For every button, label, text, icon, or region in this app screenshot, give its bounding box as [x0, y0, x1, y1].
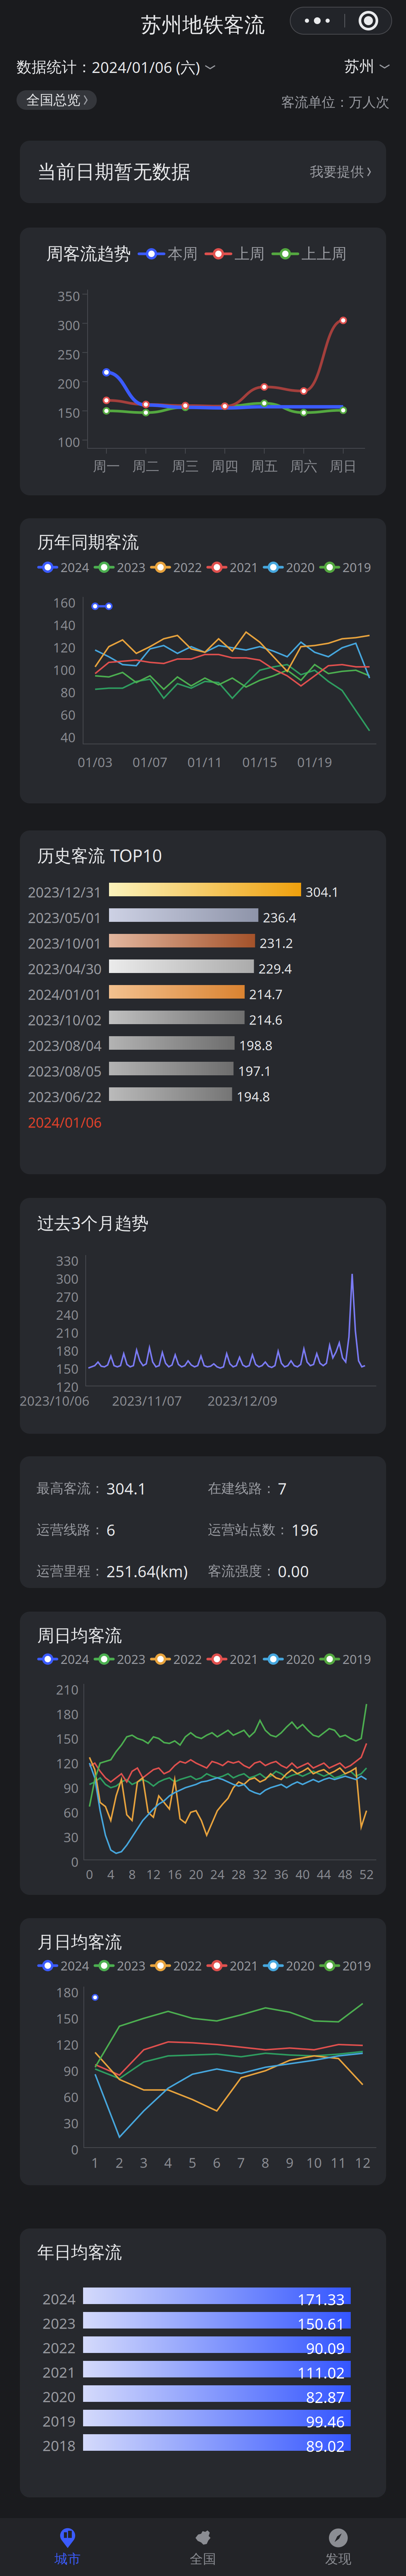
staticText: 2020	[286, 1957, 315, 1974]
staticText: 2023/10/06	[20, 1392, 89, 1409]
staticText: 2024/01/06	[28, 1113, 101, 1132]
staticText: 6	[213, 2154, 221, 2172]
staticText: 4	[107, 1866, 114, 1883]
staticText: 198.8	[239, 1037, 273, 1054]
staticText: 年日均客流	[37, 2242, 122, 2263]
staticText: 01/15	[242, 753, 277, 771]
staticText: 2024	[61, 1957, 89, 1974]
button[interactable]: 2024/01/06 (六)	[92, 57, 215, 77]
staticText: 发现	[325, 2551, 351, 2567]
staticText: 2021	[230, 1957, 258, 1974]
staticText: 2020	[286, 1651, 315, 1667]
staticText: 30	[64, 1829, 79, 1846]
staticText: 2023/08/05	[28, 1062, 101, 1080]
button[interactable]: 全国总览	[17, 90, 97, 110]
staticText: 60	[64, 1804, 79, 1821]
staticText: 229.4	[258, 960, 292, 977]
staticText: 9	[286, 2154, 294, 2172]
staticText: 2020	[42, 2387, 76, 2406]
staticText: 2023/12/09	[208, 1392, 277, 1409]
staticText: 300	[58, 317, 80, 334]
button[interactable]: More options	[290, 7, 344, 34]
staticText: 0	[86, 1866, 93, 1883]
staticText: 2023/11/07	[112, 1392, 182, 1409]
button[interactable]: 全国	[135, 2518, 271, 2576]
staticText: 40	[61, 729, 76, 746]
button[interactable]: 苏州	[344, 57, 389, 76]
staticText: 12	[355, 2154, 371, 2172]
staticText: 0	[71, 2141, 79, 2158]
staticText: 90	[64, 2062, 79, 2080]
staticText: 周客流趋势	[46, 243, 131, 264]
staticText: 99.46	[306, 2412, 345, 2432]
staticText: 111.02	[297, 2363, 345, 2383]
staticText: 上周	[235, 245, 265, 263]
staticText: 6	[106, 1519, 115, 1540]
staticText: 150	[56, 1730, 79, 1747]
staticText: 2019	[42, 2411, 76, 2431]
staticText: 2022	[173, 1651, 202, 1667]
button[interactable]: 城市	[0, 2518, 135, 2576]
staticText: 24	[210, 1866, 225, 1883]
staticText: 2023/10/02	[28, 1011, 101, 1029]
staticText: 7	[237, 2154, 245, 2172]
staticText: 44	[317, 1866, 331, 1883]
button[interactable]: 我要提供	[279, 141, 386, 203]
button[interactable]: Close	[345, 7, 392, 34]
staticText: 32	[253, 1866, 267, 1883]
staticText: 2023/04/30	[28, 959, 101, 978]
staticText: 197.1	[238, 1062, 271, 1079]
staticText: 2023/06/22	[28, 1087, 101, 1106]
staticText: 30	[64, 2115, 79, 2132]
staticText: 01/07	[133, 753, 167, 771]
staticText: 90.09	[306, 2338, 345, 2358]
staticText: 90	[64, 1779, 79, 1797]
staticText: 36	[274, 1866, 288, 1883]
staticText: 2022	[173, 559, 202, 576]
staticText: 当前日期暂无数据	[37, 160, 191, 184]
button[interactable]: 发现	[271, 2518, 406, 2576]
staticText: 120	[56, 2036, 79, 2053]
staticText: 150	[58, 404, 80, 421]
staticText: 2023/05/01	[28, 908, 101, 927]
staticText: 2021	[230, 1651, 258, 1667]
staticText: 2023	[117, 1957, 145, 1974]
staticText: 194.8	[237, 1088, 270, 1105]
staticText: 4	[164, 2154, 172, 2172]
staticText: 全国总览	[26, 92, 80, 108]
staticText: 运营站点数：	[208, 1521, 289, 1538]
staticText: 20	[189, 1866, 203, 1883]
staticText: 100	[58, 433, 80, 451]
staticText: 200	[58, 375, 80, 392]
staticText: 2022	[173, 1957, 202, 1974]
staticText: 周日均客流	[37, 1625, 122, 1646]
staticText: 2022	[42, 2338, 76, 2357]
staticText: 在建线路：	[208, 1480, 276, 1497]
staticText: 2023	[117, 559, 145, 576]
staticText: 60	[61, 706, 76, 723]
staticText: 本周	[168, 245, 198, 263]
staticText: 2023/12/31	[28, 883, 101, 901]
staticText: 140	[53, 616, 76, 634]
staticText: 7	[278, 1478, 287, 1499]
staticText: 月日均客流	[37, 1932, 122, 1953]
staticText: 历史客流 TOP10	[37, 844, 162, 867]
staticText: 60	[64, 2088, 79, 2106]
staticText: 过去3个月趋势	[37, 1211, 148, 1234]
staticText: 2	[115, 2154, 123, 2172]
staticText: 周五	[251, 458, 278, 475]
staticText: 11	[331, 2154, 346, 2172]
staticText: 120	[56, 1378, 79, 1395]
staticText: 2019	[342, 1957, 371, 1974]
staticText: 251.64(km)	[106, 1561, 188, 1582]
staticText: 客流强度：	[208, 1563, 276, 1579]
staticText: 2024	[61, 559, 89, 576]
staticText: 10	[306, 2154, 322, 2172]
staticText: 2021	[42, 2362, 76, 2382]
staticText: 231.2	[260, 934, 293, 952]
staticText: 2023	[42, 2313, 76, 2333]
staticText: 8	[261, 2154, 269, 2172]
staticText: 0	[71, 1853, 79, 1870]
staticText: 350	[58, 287, 80, 305]
staticText: 150	[56, 1360, 79, 1377]
